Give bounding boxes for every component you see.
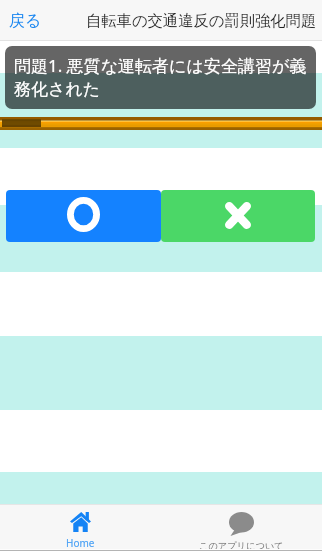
button[interactable]: ばつ 誤り [161,190,315,242]
staticText: 自転車の交通違反の罰則強化問題 [86,11,317,30]
staticText: 戻る [9,11,42,31]
staticText: Home [66,536,95,550]
button[interactable]: このアプリについて [161,504,322,551]
button[interactable]: まる 正しい [6,190,161,242]
button[interactable]: Home [0,504,161,551]
staticText: 問題1. 悪質な運転者には安全講習が義務化された [14,54,310,100]
button[interactable]: 戻る [0,0,58,41]
staticText: このアプリについて [199,540,284,551]
